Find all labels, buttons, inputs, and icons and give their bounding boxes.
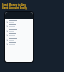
staticText: Bank Account Easily (2, 6, 27, 9)
button[interactable] (5, 37, 33, 42)
button[interactable] (5, 28, 33, 33)
button[interactable] (5, 19, 33, 24)
staticText: Send Money to Any (2, 3, 26, 6)
button[interactable] (5, 41, 33, 46)
button[interactable] (5, 23, 33, 28)
button[interactable] (5, 32, 33, 37)
